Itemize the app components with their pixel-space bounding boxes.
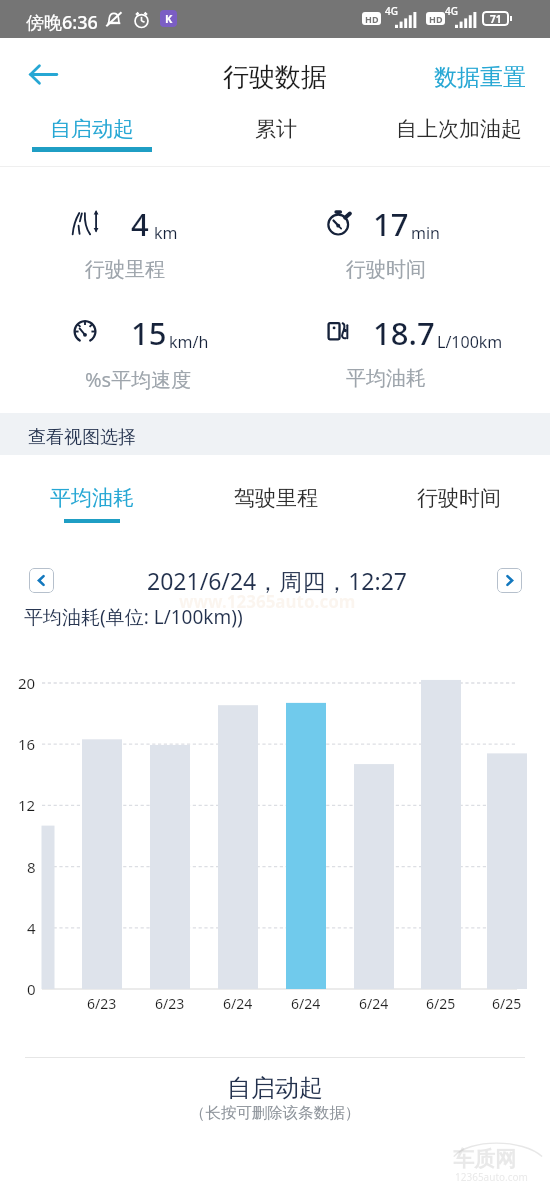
staticText: 12365auto.com [455,1170,528,1184]
button[interactable]: 驾驶里程 [184,455,367,531]
button[interactable]: 自启动起 [0,100,184,166]
button[interactable]: 行驶时间 [367,455,550,531]
staticText: K [165,11,173,26]
staticText: （长按可删除该条数据） [0,1103,550,1123]
button[interactable]: Next date [497,568,522,593]
staticText: HD [429,13,443,25]
staticText: km [154,222,178,244]
staticText: 0 [27,979,36,999]
staticText: 平均油耗(单位: L/100km)) [24,604,243,630]
button[interactable]: 自上次加油起 [367,100,550,166]
button[interactable]: 平均油耗 [0,455,184,531]
staticText: 6/24 [359,994,389,1013]
staticText: www.12365auto.com [179,590,356,613]
staticText: 查看视图选择 [28,426,136,449]
staticText: 15 [131,312,167,354]
staticText: 6/23 [87,994,117,1013]
button[interactable]: Previous date [29,568,54,593]
button[interactable]: 数据重置 [434,63,526,92]
staticText: 6/23 [155,994,185,1013]
staticText: 自启动起 [0,1073,550,1103]
staticText: 车质网 [453,1146,516,1172]
button[interactable]: 累计 [184,100,367,166]
staticText: 20 [18,673,36,693]
staticText: min [411,222,440,244]
staticText: 6/25 [426,994,456,1013]
staticText: L/100km [437,331,503,353]
staticText: 累计 [255,116,297,142]
staticText: 8 [27,857,36,877]
staticText: 17 [373,203,409,245]
staticText: 傍晚6:36 [26,10,98,35]
staticText: HD [365,13,379,25]
staticText: 4 [27,918,36,938]
staticText: 4G [445,4,458,18]
staticText: 6/24 [291,994,321,1013]
staticText: 行驶里程 [85,257,165,282]
staticText: 驾驶里程 [234,485,318,511]
staticText: 平均油耗 [50,485,134,511]
staticText: 行驶时间 [417,485,501,511]
staticText: 4G [385,4,398,18]
staticText: 12 [18,795,36,815]
button[interactable]: Back [21,52,65,96]
staticText: 平均油耗 [346,366,426,391]
staticText: 4 [131,203,149,245]
staticText: km/h [169,331,209,353]
staticText: 自上次加油起 [396,116,522,142]
staticText: 18.7 [373,312,435,354]
staticText: 6/25 [492,994,522,1013]
staticText: 16 [18,734,36,754]
staticText: 自启动起 [50,116,134,142]
staticText: 2021/6/24，周四，12:27 [2,565,550,596]
staticText: 数据重置 [434,63,526,92]
staticText: 行驶时间 [346,257,426,282]
staticText: 6/24 [223,994,253,1013]
staticText: 行驶数据 [223,61,327,94]
staticText: %s平均速度 [85,366,192,393]
staticText: 71 [490,12,502,26]
